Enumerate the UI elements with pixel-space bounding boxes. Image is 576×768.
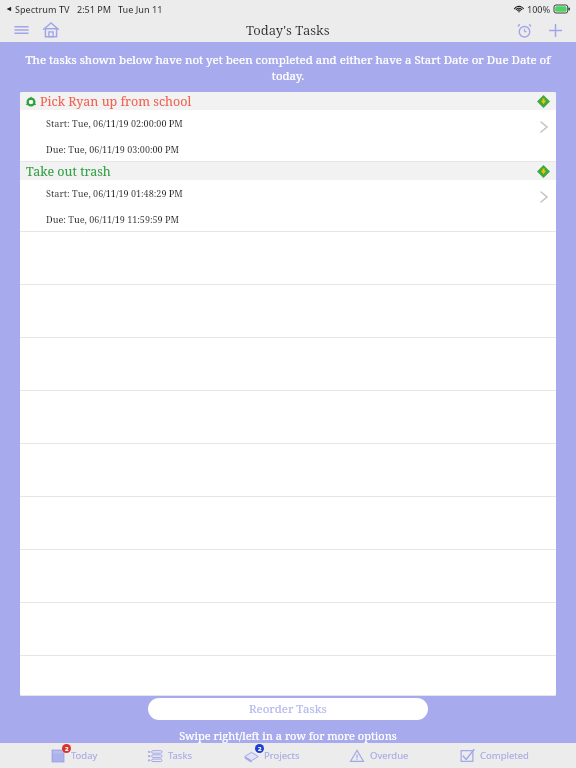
staticText: Overdue [370, 749, 409, 762]
button[interactable]: Tasks [141, 743, 197, 768]
staticText: 100% [527, 3, 551, 15]
button[interactable] [20, 391, 556, 444]
button[interactable]: 2 [44, 743, 102, 768]
staticText: The tasks shown below have not yet been … [22, 52, 554, 84]
staticText: 2 [65, 745, 69, 753]
button[interactable]: Overdue [343, 743, 413, 768]
button[interactable]: Menu [10, 19, 32, 41]
button[interactable] [20, 338, 556, 391]
staticText: Start: Tue, 06/11/19 01:48:29 PM [46, 187, 183, 199]
button[interactable] [20, 232, 556, 285]
button[interactable]: Alarms [513, 19, 535, 41]
staticText: Tue Jun 11 [118, 3, 163, 15]
staticText: Due: Tue, 06/11/19 11:59:59 PM [46, 213, 180, 225]
staticText: Today [71, 749, 98, 762]
button[interactable] [20, 497, 556, 550]
staticText: Spectrum TV [15, 3, 70, 15]
staticText: Completed [480, 749, 529, 762]
staticText: Take out trash [26, 163, 111, 180]
staticText: 2 [258, 745, 262, 753]
button[interactable]: 2 [237, 743, 304, 768]
staticText: Start: Tue, 06/11/19 02:00:00 PM [46, 117, 183, 129]
button[interactable]: Take out trash [20, 162, 556, 232]
staticText: Pick Ryan up from school [40, 93, 192, 110]
staticText: Due: Tue, 06/11/19 03:00:00 PM [46, 143, 180, 155]
button[interactable]: Pick Ryan up from school [20, 92, 556, 162]
button[interactable]: Completed [453, 743, 533, 768]
button[interactable] [20, 444, 556, 497]
staticText: Today's Tasks [246, 21, 330, 39]
button[interactable] [20, 285, 556, 338]
button[interactable]: Home [40, 19, 62, 41]
button[interactable] [20, 656, 556, 696]
staticText: Swipe right/left in a row for more optio… [0, 728, 576, 743]
button[interactable]: Add task [544, 19, 566, 41]
staticText: Projects [264, 749, 300, 762]
button[interactable]: Reorder Tasks [148, 698, 428, 720]
staticText: Reorder Tasks [249, 701, 327, 717]
button[interactable] [20, 603, 556, 656]
staticText: 2:51 PM [77, 3, 111, 15]
button[interactable] [20, 550, 556, 603]
staticText: Tasks [168, 749, 193, 762]
